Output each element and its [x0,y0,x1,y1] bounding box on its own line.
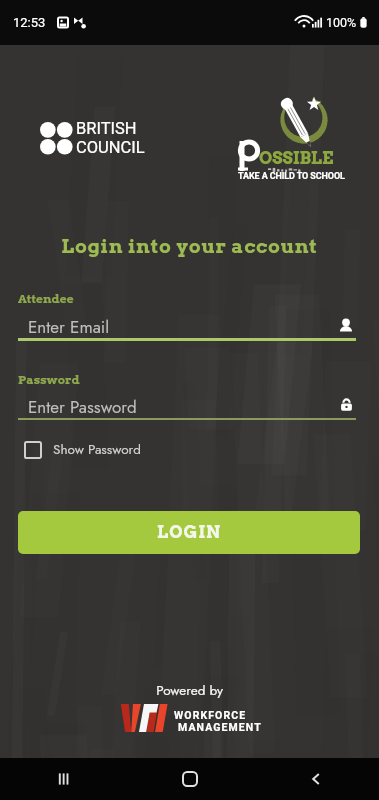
staticText: COUNCIL [76,138,145,157]
button[interactable]: LOGIN [18,511,360,554]
staticText: Login into your account [0,234,379,258]
staticText: TAKE A CHILD TO SCHOOL [238,171,353,182]
staticText: Enter Password [28,395,137,420]
staticText: Password [18,372,80,386]
staticText: Show Password [53,440,141,460]
button[interactable]: Enter Email [18,312,356,344]
button[interactable]: Show Password [18,437,141,463]
staticText: Attendee [18,291,74,305]
staticText: MANAGEMENT [178,721,262,733]
button[interactable]: Home [155,758,225,800]
button[interactable]: Enter Password [18,392,356,424]
staticText: Powered by [0,681,379,701]
button[interactable]: Recent apps [28,758,98,800]
staticText: Enter Email [28,315,110,340]
staticText: BRITISH [76,119,137,138]
staticText: WORKFORCE [174,709,247,721]
staticText: OSSIBLE [259,148,334,169]
button[interactable]: Back [281,758,351,800]
staticText: LOGIN [157,522,222,543]
staticText: 12:53 [13,15,46,30]
staticText: 100% [326,15,357,30]
